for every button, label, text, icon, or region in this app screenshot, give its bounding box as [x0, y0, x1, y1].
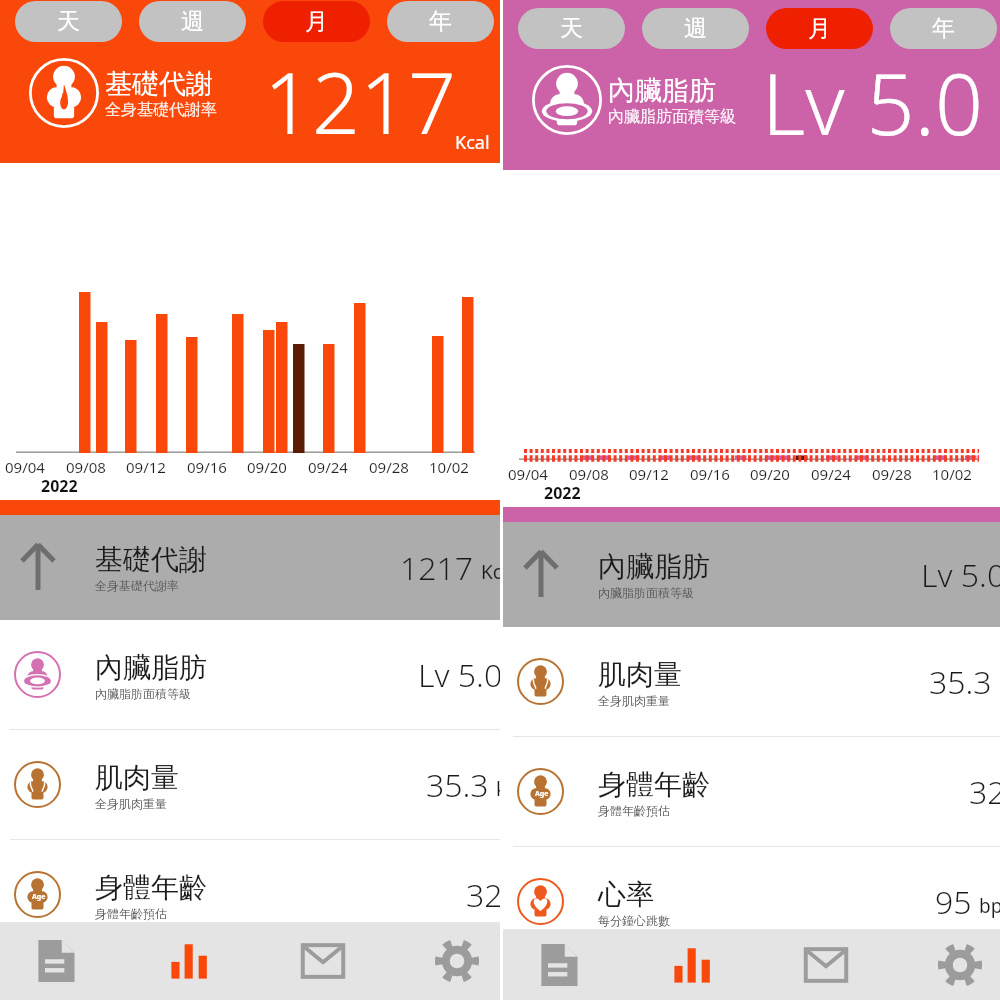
- staticText: 內臟脂肪面積等級: [95, 686, 191, 701]
- staticText: 肌肉量: [95, 760, 179, 795]
- staticText: 基礎代謝: [95, 542, 207, 577]
- button[interactable]: 心率: [0, 950, 500, 1000]
- staticText: 09/04: [508, 464, 548, 484]
- staticText: 天: [560, 14, 583, 43]
- button[interactable]: 內臟脂肪: [0, 620, 500, 730]
- staticText: 09/12: [629, 464, 669, 484]
- button[interactable]: Age: [0, 840, 500, 950]
- button[interactable]: 基礎代謝: [0, 515, 500, 620]
- button[interactable]: 月: [766, 8, 873, 49]
- staticText: 35.3: [426, 763, 489, 807]
- staticText: 09/12: [126, 457, 166, 477]
- staticText: Age: [32, 892, 46, 902]
- staticText: 09/16: [187, 457, 227, 477]
- staticText: Kcal: [481, 559, 500, 585]
- staticText: 心率: [598, 877, 654, 912]
- staticText: 2022: [41, 475, 78, 497]
- button[interactable]: Settings: [390, 922, 500, 1000]
- staticText: 09/24: [308, 457, 348, 477]
- staticText: 內臟脂肪面積等級: [608, 107, 736, 127]
- staticText: Lv 5.0: [762, 45, 983, 159]
- staticText: 09/04: [5, 457, 45, 477]
- staticText: 1217: [264, 44, 456, 158]
- staticText: 32: [969, 770, 1000, 814]
- staticText: kg: [496, 776, 500, 802]
- button[interactable]: 肌肉量: [0, 730, 500, 840]
- staticText: 09/28: [872, 464, 912, 484]
- staticText: 09/16: [690, 464, 730, 484]
- button[interactable]: Messages: [759, 929, 893, 1000]
- button[interactable]: Reports: [500, 929, 625, 1000]
- staticText: bpm: [979, 893, 1000, 919]
- staticText: 身體年齡: [598, 767, 710, 802]
- staticText: 身體年齡預估: [95, 906, 167, 921]
- staticText: Lv 5.0: [418, 653, 500, 697]
- staticText: 09/08: [569, 464, 609, 484]
- button[interactable]: Charts: [122, 922, 256, 1000]
- staticText: 天: [57, 7, 80, 36]
- staticText: Kcal: [455, 130, 490, 155]
- staticText: 09/20: [750, 464, 790, 484]
- staticText: 年: [429, 7, 452, 36]
- staticText: 月: [305, 7, 328, 36]
- button[interactable]: 年: [890, 8, 997, 49]
- button[interactable]: Settings: [893, 929, 1000, 1000]
- staticText: 09/28: [369, 457, 409, 477]
- staticText: 09/24: [811, 464, 851, 484]
- staticText: 2022: [544, 482, 581, 504]
- button[interactable]: Reports: [0, 922, 122, 1000]
- staticText: 全身肌肉重量: [598, 693, 670, 708]
- staticText: 月: [808, 14, 831, 43]
- staticText: 內臟脂肪: [608, 74, 716, 108]
- staticText: 95: [935, 880, 972, 924]
- button[interactable]: Age: [503, 737, 1000, 847]
- staticText: 09/08: [66, 457, 106, 477]
- staticText: 09/20: [247, 457, 287, 477]
- staticText: 1217: [400, 546, 474, 590]
- staticText: 基礎代謝: [105, 67, 213, 101]
- staticText: 身體年齡: [95, 870, 207, 905]
- staticText: 每分鐘心跳數: [598, 913, 670, 928]
- staticText: 全身基礎代謝率: [105, 100, 217, 120]
- button[interactable]: 月: [263, 1, 370, 42]
- staticText: 全身肌肉重量: [95, 796, 167, 811]
- staticText: 10/02: [932, 464, 972, 484]
- button[interactable]: 年: [387, 1, 494, 42]
- staticText: 身體年齡預估: [598, 803, 670, 818]
- button[interactable]: 週: [642, 8, 749, 49]
- staticText: 全身基礎代謝率: [95, 578, 179, 593]
- staticText: Age: [535, 789, 549, 799]
- button[interactable]: 肌肉量: [503, 627, 1000, 737]
- staticText: 內臟脂肪: [598, 549, 710, 584]
- button[interactable]: 週: [139, 1, 246, 42]
- staticText: 週: [684, 14, 707, 43]
- staticText: 肌肉量: [598, 657, 682, 692]
- button[interactable]: Charts: [625, 929, 759, 1000]
- button[interactable]: 天: [518, 8, 625, 49]
- button[interactable]: 內臟脂肪: [503, 522, 1000, 627]
- staticText: 內臟脂肪: [95, 650, 207, 685]
- staticText: 10/02: [429, 457, 469, 477]
- staticText: 內臟脂肪面積等級: [598, 585, 694, 600]
- button[interactable]: 天: [15, 1, 122, 42]
- button[interactable]: Messages: [256, 922, 390, 1000]
- staticText: 32: [466, 873, 500, 917]
- staticText: 35.3: [929, 660, 992, 704]
- button[interactable]: 心率: [503, 847, 1000, 957]
- staticText: 年: [932, 14, 955, 43]
- staticText: Lv 5.0: [921, 553, 1000, 597]
- staticText: 週: [181, 7, 204, 36]
